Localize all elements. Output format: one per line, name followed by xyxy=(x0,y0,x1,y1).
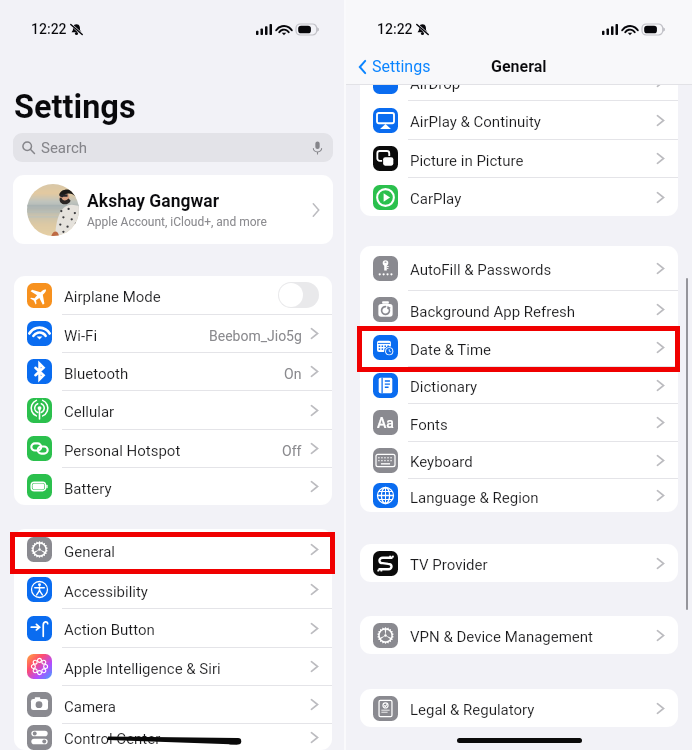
button[interactable]: Apple Intelligence & Siri xyxy=(14,648,332,685)
staticText: Background App Refresh xyxy=(410,303,576,321)
staticText: Aa xyxy=(377,415,394,431)
button[interactable]: Action Button xyxy=(14,609,332,647)
staticText: Apple Account, iCloud+, and more xyxy=(87,215,267,229)
staticText: VPN & Device Management xyxy=(410,628,594,646)
staticText: Keyboard xyxy=(410,453,473,471)
button[interactable]: Wi-Fi xyxy=(14,315,332,352)
staticText: Apple Intelligence & Siri xyxy=(64,660,221,678)
staticText: On xyxy=(284,366,302,382)
button[interactable]: TV Provider xyxy=(360,544,678,582)
staticText: Date & Time xyxy=(410,341,492,359)
button[interactable]: AirPlay & Continuity xyxy=(360,101,678,139)
button[interactable]: Picture in Picture xyxy=(360,140,678,177)
button[interactable]: Background App Refresh xyxy=(360,291,678,328)
button[interactable]: Akshay Gangwar xyxy=(13,175,333,244)
staticText: Accessibility xyxy=(64,583,148,601)
button[interactable]: Search xyxy=(13,133,333,162)
staticText: General xyxy=(64,543,116,561)
staticText: AutoFill & Passwords xyxy=(410,261,552,279)
staticText: Cellular xyxy=(64,403,115,421)
staticText: 12:22 xyxy=(377,21,413,37)
staticText: General xyxy=(491,57,547,76)
staticText: Battery xyxy=(64,480,112,498)
staticText: Airplane Mode xyxy=(64,288,161,306)
button[interactable]: Battery xyxy=(14,468,332,505)
button[interactable]: Date & Time xyxy=(360,329,678,366)
button[interactable]: Keyboard xyxy=(360,442,678,478)
staticText: Action Button xyxy=(64,621,155,639)
button[interactable]: Personal Hotspot xyxy=(14,430,332,467)
button[interactable]: Camera xyxy=(14,686,332,723)
button[interactable]: Settings xyxy=(358,57,431,76)
staticText: Off xyxy=(282,443,302,459)
staticText: Beebom_Jio5g xyxy=(209,328,302,344)
staticText: AirPlay & Continuity xyxy=(410,113,541,131)
staticText: AirDrop xyxy=(410,75,461,93)
staticText: Legal & Regulatory xyxy=(410,701,535,719)
button[interactable]: CarPlay xyxy=(360,178,678,216)
button[interactable]: AutoFill & Passwords xyxy=(360,246,678,290)
staticText: Picture in Picture xyxy=(410,152,524,170)
staticText: Akshay Gangwar xyxy=(87,191,220,212)
button[interactable]: Control Center xyxy=(14,724,332,750)
staticText: Dictionary xyxy=(410,378,478,396)
button[interactable]: VPN & Device Management xyxy=(360,616,678,654)
button[interactable]: Airplane Mode xyxy=(14,276,332,314)
staticText: CarPlay xyxy=(410,190,462,208)
staticText: Bluetooth xyxy=(64,365,129,383)
staticText: Control Center xyxy=(64,730,161,748)
staticText: Settings xyxy=(372,57,431,76)
button[interactable]: Airplane Mode toggle xyxy=(278,282,319,308)
button[interactable]: Cellular xyxy=(14,391,332,429)
staticText: Settings xyxy=(14,88,136,126)
staticText: Fonts xyxy=(410,416,448,434)
button[interactable]: Dictionary xyxy=(360,367,678,403)
button[interactable]: AirDrop xyxy=(360,63,678,100)
button[interactable]: General xyxy=(14,529,332,570)
staticText: Language & Region xyxy=(410,489,539,507)
staticText: Camera xyxy=(64,698,116,716)
staticText: 12:22 xyxy=(31,21,67,37)
staticText: Personal Hotspot xyxy=(64,442,181,460)
staticText: Search xyxy=(41,139,88,157)
staticText: TV Provider xyxy=(410,556,488,574)
button[interactable]: Accessibility xyxy=(14,571,332,608)
button[interactable]: Legal & Regulatory xyxy=(360,689,678,727)
button[interactable]: Aa xyxy=(360,404,678,441)
button[interactable]: Bluetooth xyxy=(14,353,332,390)
button[interactable]: Language & Region xyxy=(360,479,678,512)
staticText: Wi-Fi xyxy=(64,327,98,345)
